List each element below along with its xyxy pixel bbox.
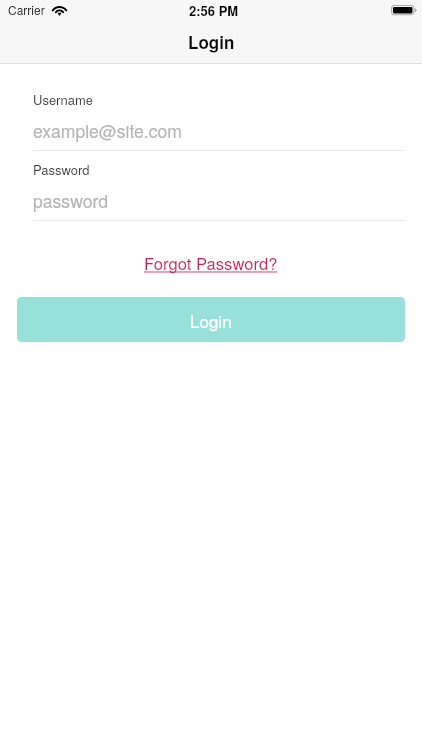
staticText: password [33,188,109,213]
staticText: Username [33,90,93,109]
staticText: Password [33,160,90,179]
button[interactable]: Login [17,297,405,342]
staticText: Login [190,308,232,332]
other: Battery [391,5,417,16]
staticText: Carrier [8,1,45,18]
staticText: example@site.com [33,118,182,143]
staticText: Login [188,30,235,54]
other: Wi-Fi [52,5,67,16]
button[interactable]: Forgot Password? [144,251,278,275]
staticText: 2:56 PM [189,1,239,20]
